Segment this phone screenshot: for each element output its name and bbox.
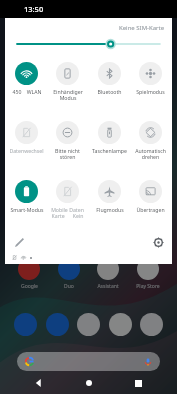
button[interactable]: Datenwechsel xyxy=(6,116,47,175)
button[interactable] xyxy=(17,37,160,51)
button[interactable]: Spielmodus xyxy=(130,57,171,116)
staticText: Play Store xyxy=(136,283,160,290)
staticText: Smart-Modus xyxy=(10,206,44,213)
staticText: 13:50 xyxy=(24,4,44,14)
staticText: Übertragen xyxy=(136,206,165,213)
staticText: Flugmodus xyxy=(96,206,124,213)
button[interactable]: Taschenlampe xyxy=(89,116,130,175)
button[interactable]: Flugmodus xyxy=(89,175,130,234)
button[interactable]: Einstellungen xyxy=(149,234,167,251)
staticText: Datenwechsel xyxy=(9,147,44,154)
staticText: Duo xyxy=(64,283,74,290)
button[interactable]: Bluetooth xyxy=(89,57,130,116)
staticText: Spielmodus xyxy=(136,88,165,95)
button[interactable]: Übertragen xyxy=(130,175,171,234)
staticText: Einhändiger Modus xyxy=(53,88,83,102)
button[interactable]: Smart-Modus xyxy=(6,175,47,234)
button[interactable]: Automatisch drehen xyxy=(130,116,171,175)
button[interactable]: Startbildschirm xyxy=(79,373,99,393)
staticText: Automatisch drehen xyxy=(135,147,166,161)
staticText: Mobile Daten Karte Kein xyxy=(51,206,84,220)
button[interactable]: 450 WLAN xyxy=(6,57,47,116)
button[interactable]: Zurück xyxy=(29,373,49,393)
staticText: Bluetooth xyxy=(97,88,122,95)
button[interactable]: Mobile Daten Karte Kein xyxy=(47,175,88,234)
button[interactable]: Übersicht xyxy=(128,373,148,393)
staticText: Taschenlampe xyxy=(92,147,127,154)
staticText: 450 WLAN xyxy=(12,88,42,95)
button[interactable] xyxy=(17,352,160,371)
staticText: Google xyxy=(21,283,38,290)
staticText: Assistant xyxy=(97,283,119,290)
button[interactable]: Bitte nicht stören xyxy=(47,116,88,175)
button[interactable]: Einhändiger Modus xyxy=(47,57,88,116)
staticText: Bitte nicht stören xyxy=(55,147,80,161)
button[interactable]: Bearbeiten xyxy=(10,234,28,251)
staticText: Keine SIM-Karte xyxy=(119,24,165,32)
